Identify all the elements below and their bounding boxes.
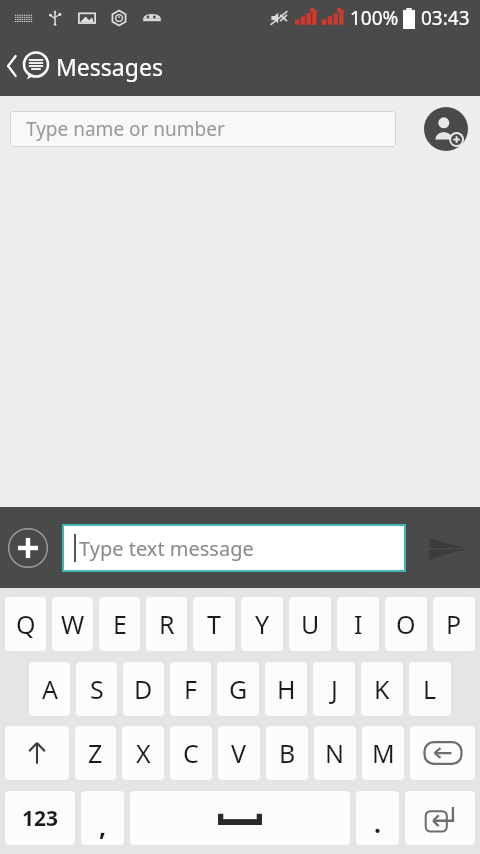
staticText: E: [113, 607, 127, 641]
button[interactable]: W: [52, 597, 93, 651]
staticText: J: [331, 672, 338, 706]
button[interactable]: Type name or number: [10, 111, 396, 147]
button[interactable]: Add recipient: [424, 107, 468, 151]
button[interactable]: I: [337, 597, 379, 651]
staticText: L: [423, 672, 437, 706]
staticText: P: [446, 607, 462, 641]
staticText: D: [134, 672, 153, 706]
button[interactable]: O: [385, 597, 427, 651]
button[interactable]: S: [76, 662, 117, 716]
button[interactable]: L: [409, 662, 451, 716]
staticText: A: [42, 672, 58, 706]
button[interactable]: Type text message: [62, 524, 406, 572]
staticText: M: [372, 736, 395, 770]
button[interactable]: Y: [241, 597, 283, 651]
button[interactable]: N: [314, 726, 356, 780]
staticText: Y: [255, 607, 270, 641]
button[interactable]: Send: [420, 521, 474, 575]
button[interactable]: D: [123, 662, 164, 716]
button[interactable]: V: [218, 726, 260, 780]
staticText: R: [159, 607, 175, 641]
staticText: I: [354, 607, 363, 641]
button[interactable]: Enter: [405, 791, 475, 845]
staticText: X: [136, 736, 151, 770]
staticText: 100%: [350, 5, 399, 31]
staticText: S: [90, 672, 104, 706]
staticText: Messages: [56, 51, 163, 82]
button[interactable]: T: [193, 597, 235, 651]
button[interactable]: G: [217, 662, 259, 716]
button[interactable]: F: [170, 662, 211, 716]
staticText: U: [301, 607, 320, 641]
button[interactable]: C: [170, 726, 212, 780]
button[interactable]: A: [29, 662, 70, 716]
button[interactable]: X: [122, 726, 164, 780]
button[interactable]: J: [313, 662, 355, 716]
button[interactable]: P: [433, 597, 475, 651]
staticText: F: [184, 672, 197, 706]
button[interactable]: Q: [5, 597, 46, 651]
staticText: G: [229, 672, 248, 706]
staticText: Type name or number: [26, 116, 225, 142]
staticText: C: [183, 736, 199, 770]
button[interactable]: Add attachment: [6, 526, 50, 570]
staticText: ,: [99, 809, 107, 843]
staticText: .: [374, 806, 382, 840]
button[interactable]: Back: [0, 36, 56, 96]
button[interactable]: ,: [81, 791, 124, 845]
button[interactable]: Space: [130, 791, 350, 845]
button[interactable]: 123: [5, 791, 75, 845]
staticText: 123: [22, 804, 59, 833]
button[interactable]: Backspace: [410, 726, 475, 780]
staticText: T: [207, 607, 221, 641]
button[interactable]: U: [289, 597, 331, 651]
button[interactable]: R: [146, 597, 187, 651]
staticText: H: [277, 672, 296, 706]
staticText: Z: [88, 736, 103, 770]
staticText: Type text message: [79, 535, 254, 562]
staticText: Q: [16, 607, 36, 641]
staticText: 03:43: [421, 5, 470, 31]
staticText: W: [61, 607, 85, 641]
button[interactable]: Z: [75, 726, 116, 780]
button[interactable]: H: [265, 662, 307, 716]
staticText: B: [279, 736, 296, 770]
button[interactable]: .: [356, 791, 399, 845]
staticText: V: [231, 736, 247, 770]
staticText: O: [396, 607, 416, 641]
button[interactable]: M: [362, 726, 404, 780]
button[interactable]: Shift: [5, 726, 69, 780]
button[interactable]: K: [361, 662, 403, 716]
button[interactable]: B: [266, 726, 308, 780]
staticText: K: [374, 672, 390, 706]
button[interactable]: E: [99, 597, 140, 651]
staticText: N: [325, 736, 345, 770]
